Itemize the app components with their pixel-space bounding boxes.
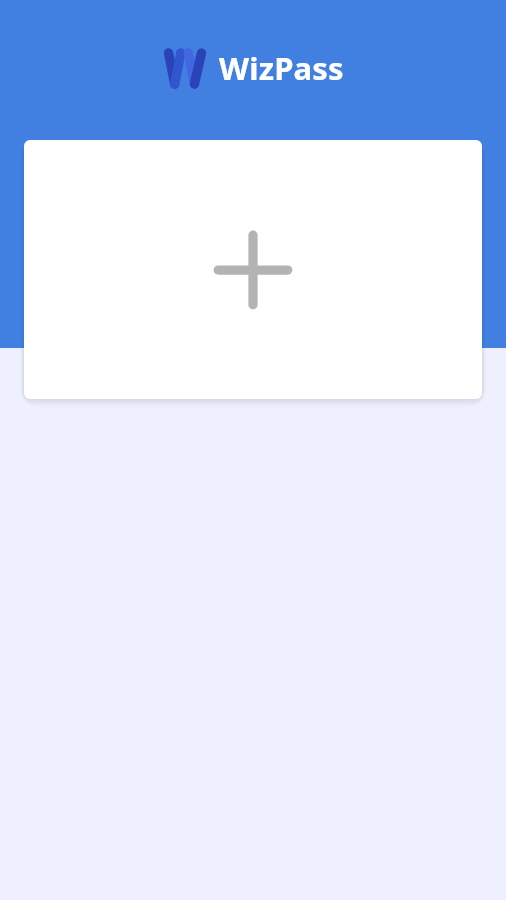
staticText: WizPass: [219, 47, 344, 89]
button[interactable]: Add pass: [24, 140, 482, 399]
